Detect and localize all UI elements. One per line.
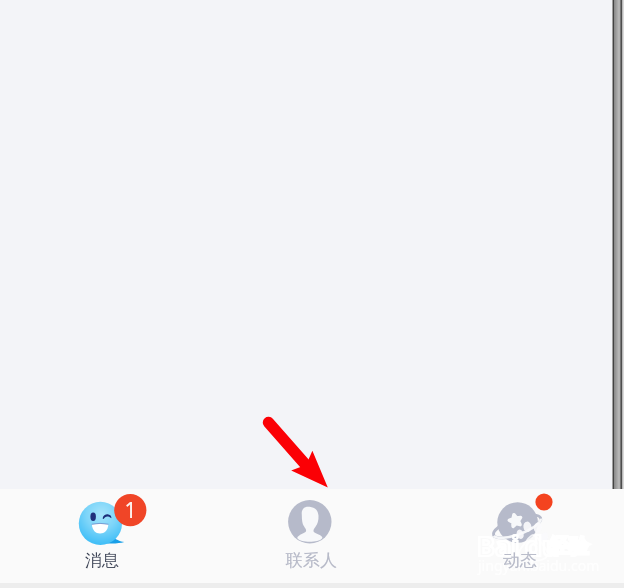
button[interactable]: 联系人 bbox=[208, 489, 416, 588]
staticText: 1 bbox=[124, 496, 137, 525]
button[interactable]: 动态 bbox=[416, 489, 624, 588]
staticText: 联系人 bbox=[286, 550, 337, 571]
button[interactable]: 消息 bbox=[0, 489, 208, 588]
staticText: 动态 bbox=[503, 550, 537, 571]
staticText: 消息 bbox=[85, 550, 119, 571]
